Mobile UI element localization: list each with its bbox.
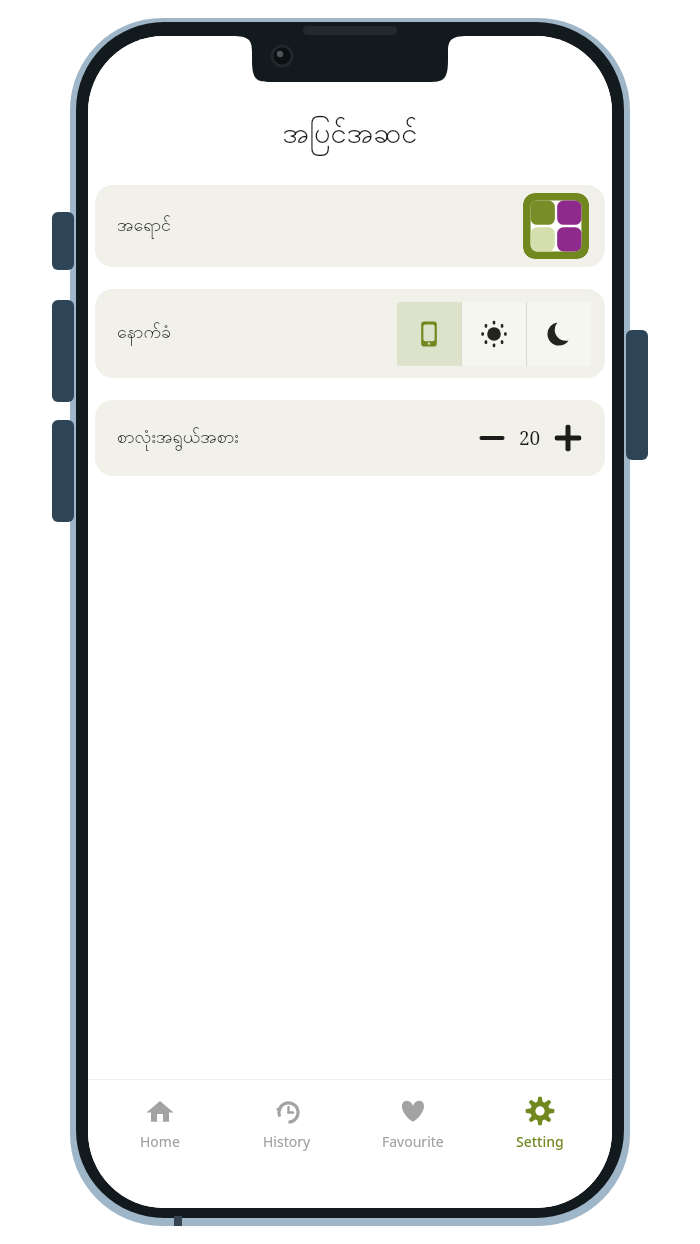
button[interactable]: Decrease font size	[475, 421, 509, 455]
button[interactable]: Setting	[485, 1092, 595, 1155]
staticText: History	[263, 1132, 311, 1151]
button[interactable]: စာလုံးအရွယ်အစား	[95, 400, 605, 476]
button[interactable]: System theme	[397, 302, 461, 366]
button[interactable]: နောက်ခံ	[95, 289, 605, 378]
button[interactable]: History	[232, 1092, 342, 1155]
button[interactable]: Favourite	[358, 1092, 468, 1155]
button[interactable]: Light theme	[462, 302, 526, 366]
button[interactable]: Increase font size	[551, 421, 585, 455]
staticText: အရောင်	[117, 213, 172, 240]
staticText: Favourite	[382, 1132, 444, 1151]
button[interactable]: Colour theme	[523, 193, 589, 259]
staticText: နောက်ခံ	[117, 320, 172, 347]
staticText: Setting	[516, 1132, 564, 1151]
staticText: စာလုံးအရွယ်အစား	[117, 425, 239, 452]
staticText: အပြင်အဆင်	[88, 114, 612, 157]
button[interactable]: Home	[105, 1092, 215, 1155]
button[interactable]: အရောင်	[95, 185, 605, 267]
button[interactable]: Dark theme	[527, 302, 591, 366]
staticText: 20	[519, 425, 541, 451]
staticText: Home	[140, 1132, 180, 1151]
